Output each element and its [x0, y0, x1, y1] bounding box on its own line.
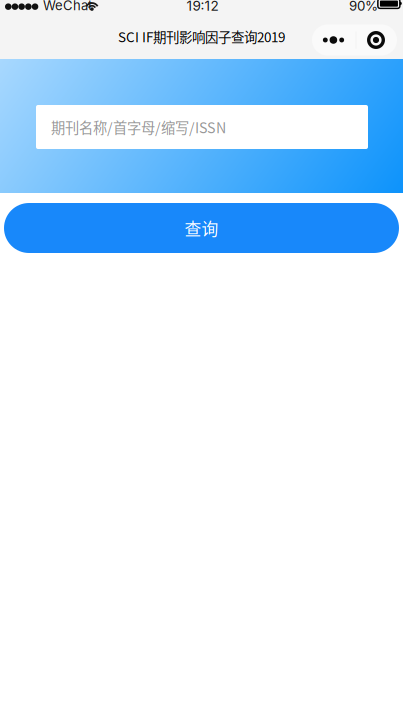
- staticText: 期刊名称/首字母/缩写/ISSN: [51, 117, 226, 137]
- button[interactable]: More: [312, 24, 355, 55]
- staticText: 19:12: [186, 0, 218, 14]
- button[interactable]: Close mini program: [355, 24, 397, 55]
- staticText: 查询: [184, 216, 218, 240]
- staticText: SCI IF期刊影响因子查询2019: [118, 27, 285, 46]
- staticText: WeChat: [43, 0, 92, 13]
- button[interactable]: 查询: [4, 203, 399, 253]
- staticText: 90%: [349, 0, 378, 14]
